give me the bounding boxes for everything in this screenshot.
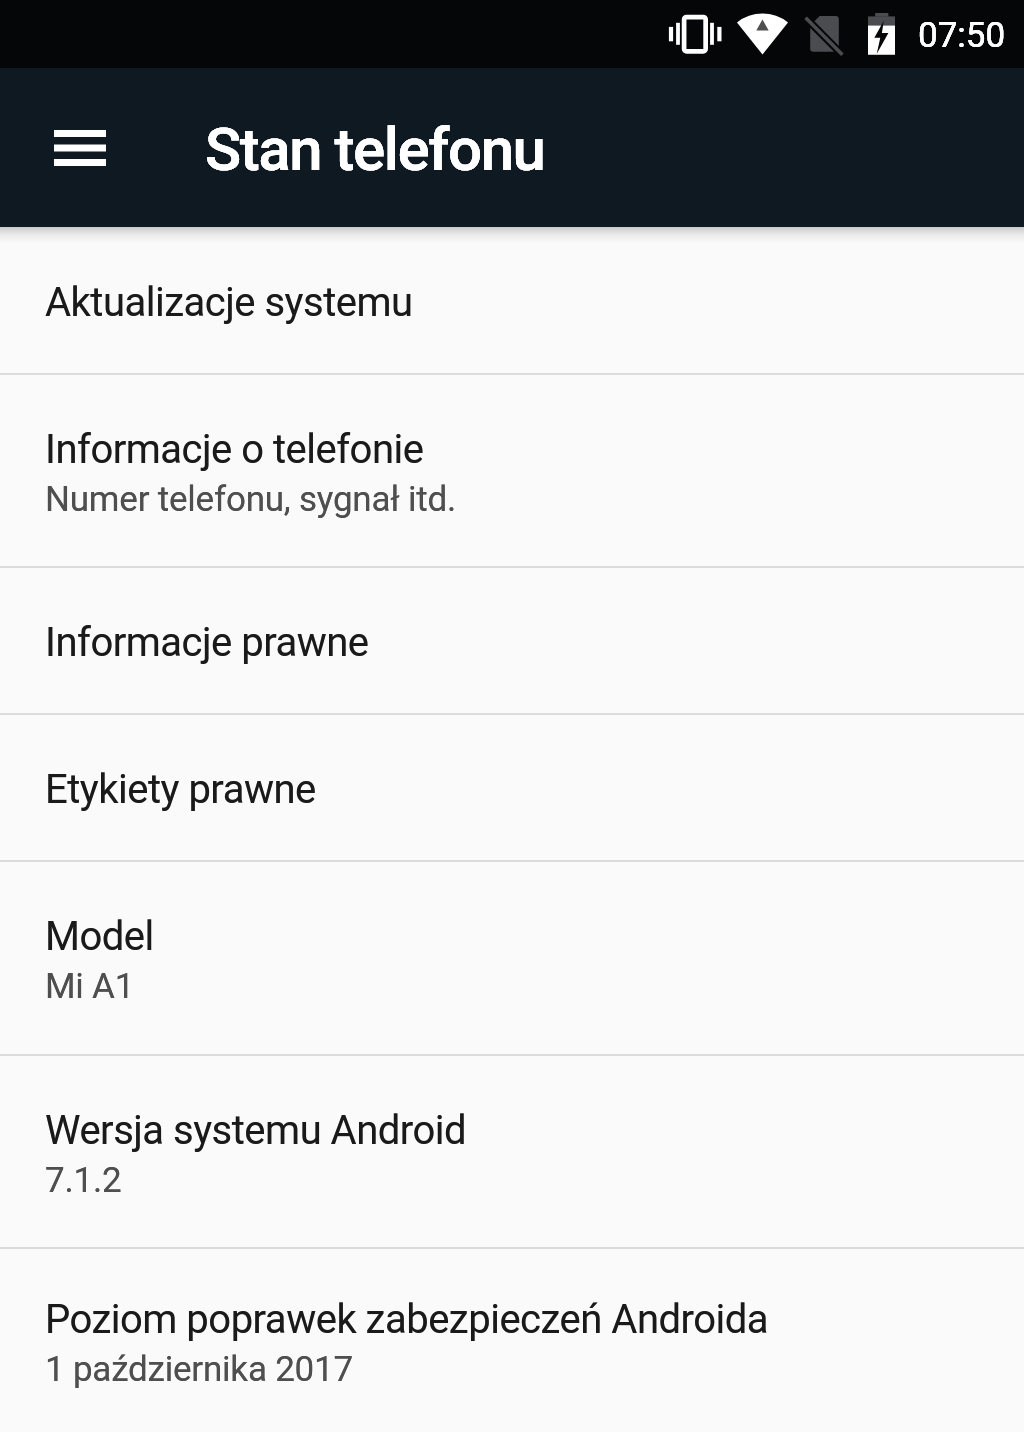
staticText: Numer telefonu, sygnał itd. xyxy=(45,479,457,520)
staticText: Stan telefonu xyxy=(205,114,545,184)
staticText: Model xyxy=(45,913,154,960)
staticText: Informacje prawne xyxy=(45,619,369,666)
button[interactable]: Etykiety prawne xyxy=(0,715,1024,860)
button[interactable]: Informacje o telefonie xyxy=(0,375,1024,566)
staticText: Poziom poprawek zabezpieczeń Androida xyxy=(45,1296,769,1343)
staticText: 7.1.2 xyxy=(45,1160,122,1201)
staticText: Poziom poprawek zabezpieczeń Androida xyxy=(45,1296,769,1343)
button[interactable]: Open navigation menu xyxy=(39,107,121,189)
staticText: Etykiety prawne xyxy=(45,766,316,813)
staticText: Etykiety prawne xyxy=(45,766,316,813)
staticText: 07:50 xyxy=(918,15,1006,56)
button[interactable]: Informacje prawne xyxy=(0,568,1024,713)
staticText: Informacje prawne xyxy=(45,619,369,666)
button[interactable]: Model xyxy=(0,862,1024,1054)
staticText: Informacje o telefonie xyxy=(45,426,424,473)
staticText: 1 października 2017 xyxy=(45,1349,353,1390)
staticText: Informacje o telefonie xyxy=(45,426,424,473)
staticText: Aktualizacje systemu xyxy=(45,279,413,326)
staticText: Wersja systemu Android xyxy=(45,1107,467,1154)
staticText: Wersja systemu Android xyxy=(45,1107,467,1154)
button[interactable]: Wersja systemu Android xyxy=(0,1056,1024,1247)
staticText: 07:50 xyxy=(918,15,1006,56)
staticText: Numer telefonu, sygnał itd. xyxy=(45,479,457,520)
staticText: Model xyxy=(45,913,154,960)
button[interactable]: Poziom poprawek zabezpieczeń Androida xyxy=(0,1249,1024,1432)
staticText: Mi A1 xyxy=(45,966,135,1007)
staticText: Stan telefonu xyxy=(205,114,545,184)
staticText: Mi A1 xyxy=(45,966,135,1007)
staticText: 7.1.2 xyxy=(45,1160,122,1201)
staticText: 1 października 2017 xyxy=(45,1349,353,1390)
button[interactable]: Aktualizacje systemu xyxy=(0,227,1024,373)
staticText: Aktualizacje systemu xyxy=(45,279,413,326)
